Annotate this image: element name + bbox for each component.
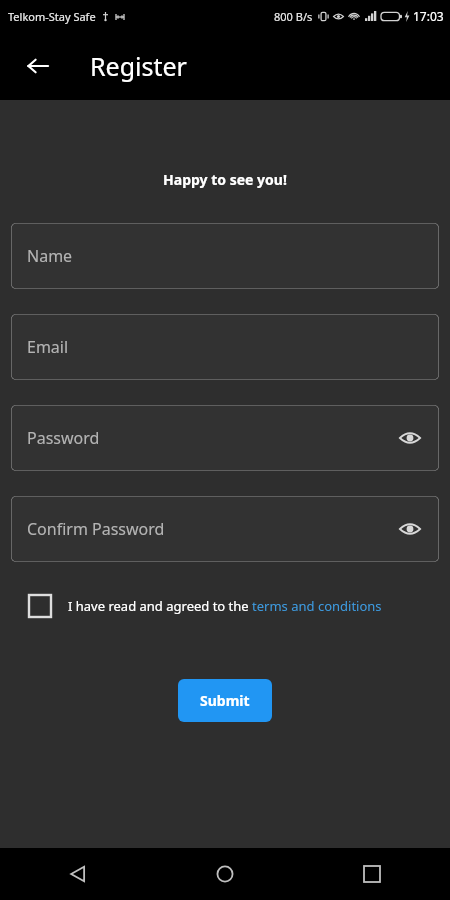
- button[interactable]: Back: [56, 852, 100, 896]
- staticText: 17:03: [413, 8, 444, 24]
- staticText: Password: [27, 427, 100, 449]
- button[interactable]: Home: [203, 852, 247, 896]
- staticText: Register: [90, 49, 187, 83]
- staticText: I have read and agreed to the terms and …: [68, 597, 382, 615]
- button[interactable]: Back: [18, 46, 58, 86]
- button[interactable]: Recents: [350, 852, 394, 896]
- button[interactable]: Toggle password visibility: [392, 511, 428, 547]
- staticText: Name: [27, 245, 73, 267]
- staticText: Email: [27, 336, 69, 358]
- button[interactable]: Name: [11, 223, 439, 289]
- button[interactable]: Toggle password visibility: [392, 420, 428, 456]
- staticText: Submit: [200, 691, 250, 710]
- staticText: Telkom-Stay Safe: [8, 9, 96, 24]
- button[interactable]: Password: [11, 405, 439, 471]
- button[interactable]: Submit: [178, 679, 272, 722]
- staticText: 800 B/s: [274, 9, 313, 24]
- button[interactable]: Confirm Password: [11, 496, 439, 562]
- staticText: Happy to see you!: [0, 170, 450, 189]
- button[interactable]: Email: [11, 314, 439, 380]
- button[interactable]: Agree to terms: [28, 594, 390, 617]
- staticText: Confirm Password: [27, 518, 165, 540]
- other: Agree to terms: [28, 594, 51, 617]
